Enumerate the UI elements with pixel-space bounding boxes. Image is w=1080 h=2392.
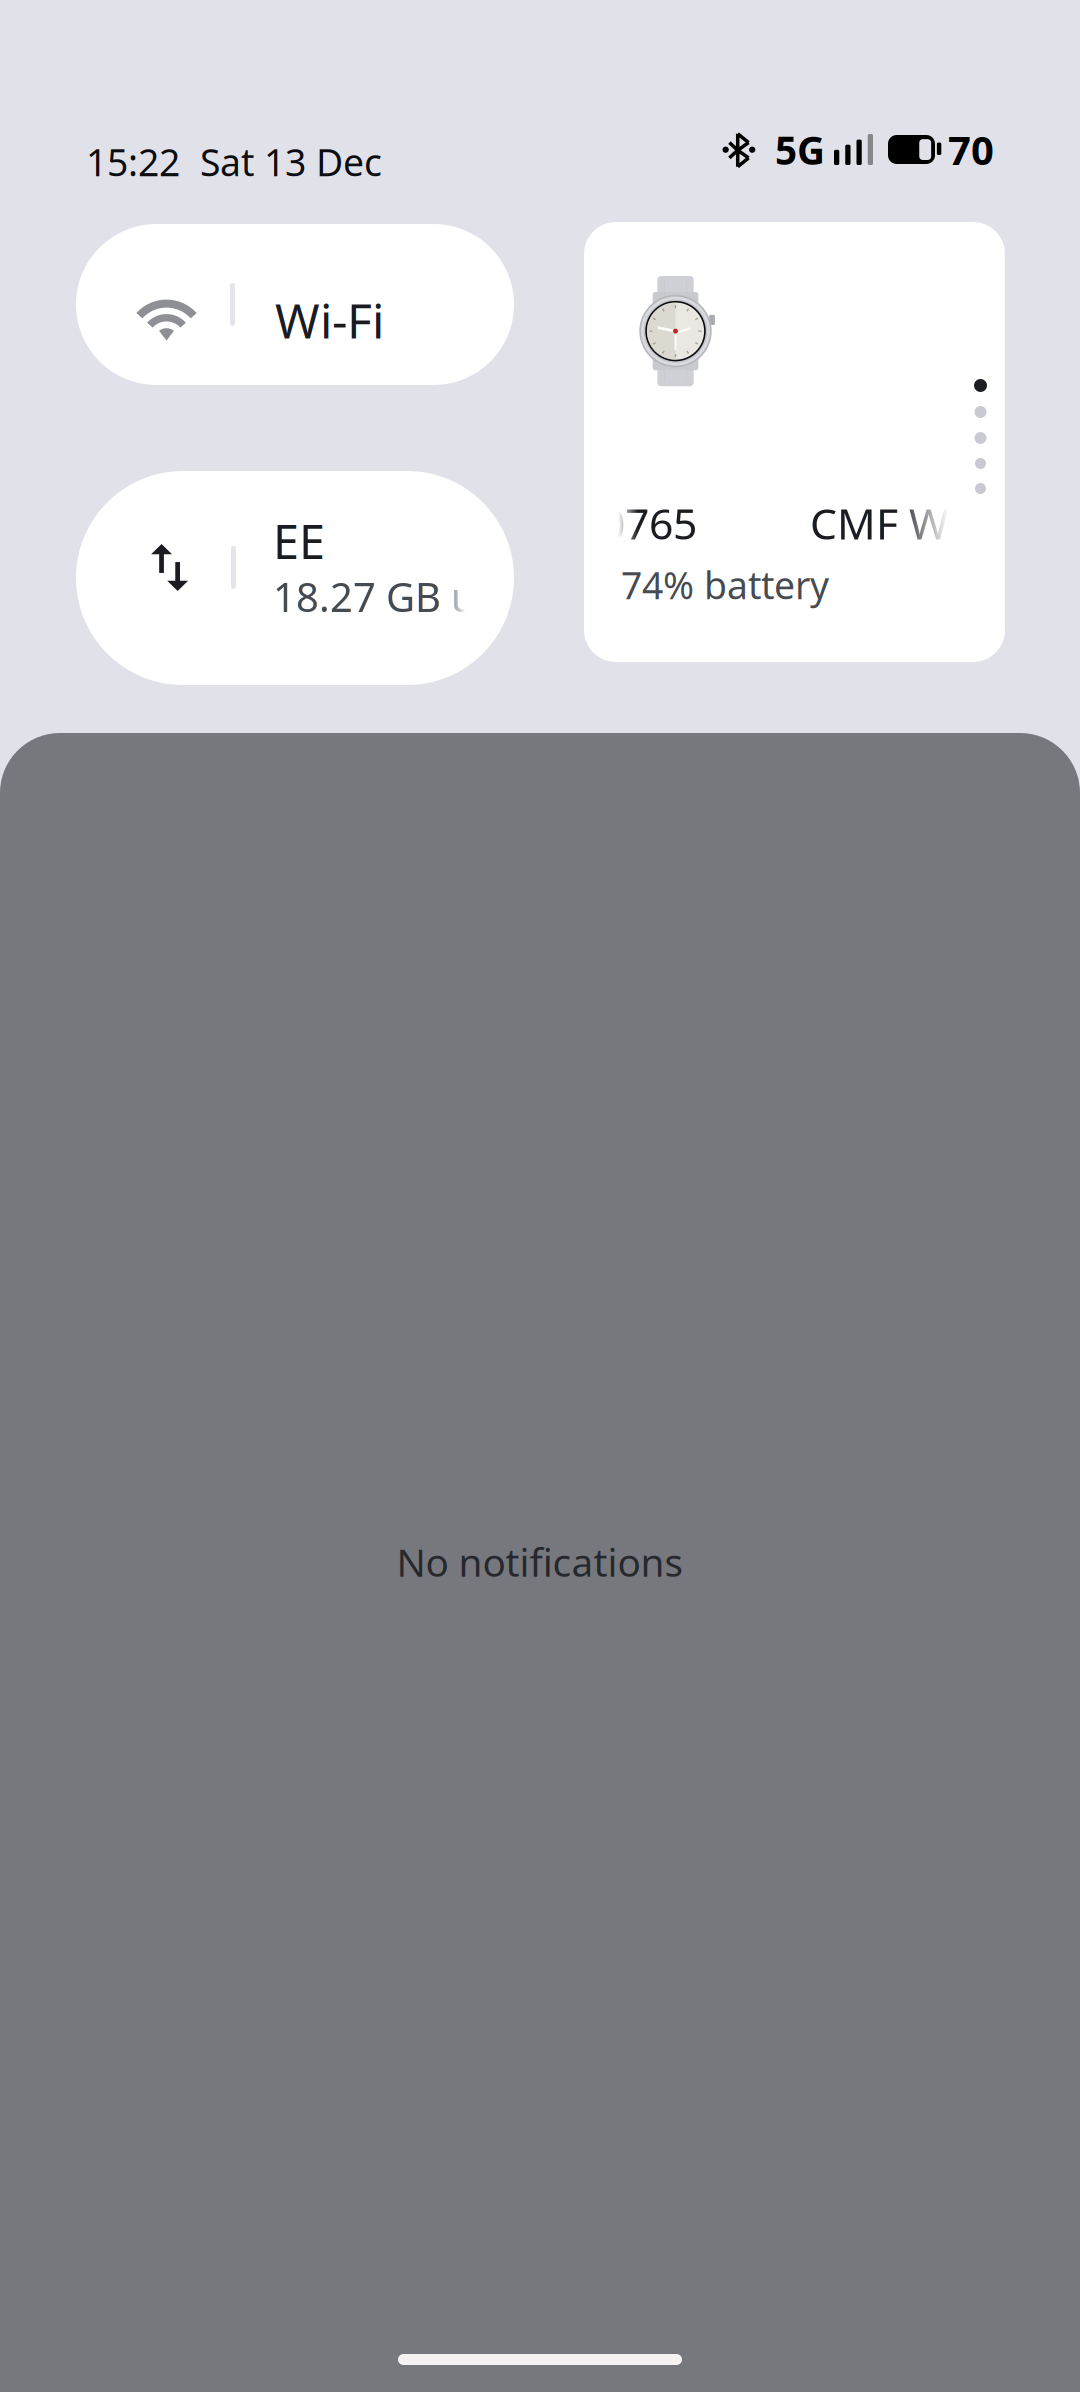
staticText: 70 — [948, 123, 994, 176]
button[interactable]: Wi-Fi — [76, 224, 514, 385]
staticText: No notifications — [396, 1536, 683, 1587]
staticText: Wi-Fi — [275, 288, 384, 352]
button[interactable]: 0765 — [584, 222, 1005, 662]
staticText: 0765 — [601, 495, 697, 551]
staticText: 18.27 GB u — [273, 570, 476, 623]
staticText: 5G — [775, 124, 825, 175]
staticText: 15:22 Sat 13 Dec — [86, 137, 382, 187]
staticText: EE — [273, 510, 325, 572]
staticText: CMF W — [810, 495, 949, 551]
button[interactable]: EE — [76, 471, 514, 685]
staticText: 74% battery — [621, 560, 829, 610]
